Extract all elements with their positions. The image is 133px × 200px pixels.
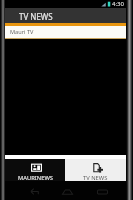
staticText: MAURINEWS [18, 174, 53, 181]
button[interactable]: Back [23, 184, 45, 199]
button[interactable]: Recent apps [91, 184, 113, 199]
button[interactable]: Home [56, 184, 78, 199]
button[interactable]: Mauri TV [5, 26, 126, 38]
staticText: TV NEWS [19, 11, 53, 22]
button[interactable]: TV NEWS [5, 8, 126, 23]
staticText: TV NEWS [83, 174, 108, 181]
button[interactable]: TV NEWS [65, 159, 126, 181]
staticText: 4:30 [112, 0, 124, 8]
staticText: Mauri TV [10, 28, 34, 36]
button[interactable]: MAURINEWS [5, 159, 65, 181]
